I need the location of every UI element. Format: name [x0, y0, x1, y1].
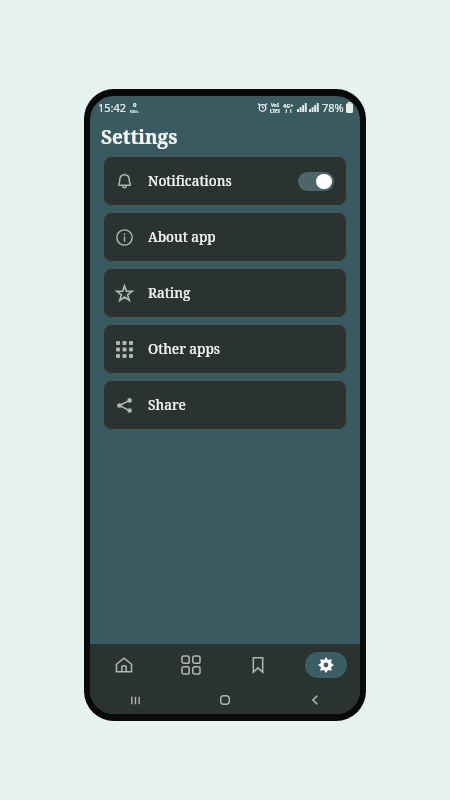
- button[interactable]: Settings: [292, 644, 360, 686]
- button[interactable]: Apps: [157, 644, 224, 686]
- staticText: Share: [148, 396, 186, 414]
- button[interactable]: Recents: [90, 686, 180, 714]
- staticText: Other apps: [148, 340, 220, 358]
- button[interactable]: Share: [103, 380, 347, 430]
- staticText: 0: [133, 101, 137, 109]
- button[interactable]: Other apps: [103, 324, 347, 374]
- staticText: LTE1: [270, 108, 281, 114]
- button[interactable]: Toggle notifications: [298, 172, 334, 191]
- staticText: Settings: [101, 124, 178, 150]
- button[interactable]: Bookmarks: [224, 644, 292, 686]
- button[interactable]: Rating: [103, 268, 347, 318]
- button[interactable]: Back: [270, 686, 360, 714]
- staticText: 4G+: [283, 102, 294, 109]
- staticText: Rating: [148, 284, 191, 302]
- button[interactable]: Home: [180, 686, 270, 714]
- staticText: About app: [148, 228, 216, 246]
- staticText: 15:42: [98, 100, 127, 115]
- staticText: 78%: [322, 100, 344, 115]
- staticText: VoS: [271, 102, 280, 108]
- button[interactable]: About app: [103, 212, 347, 262]
- button[interactable]: Home: [90, 644, 157, 686]
- staticText: Notifications: [148, 172, 232, 190]
- button[interactable]: Notifications: [103, 156, 347, 206]
- staticText: KB/s: [130, 109, 139, 114]
